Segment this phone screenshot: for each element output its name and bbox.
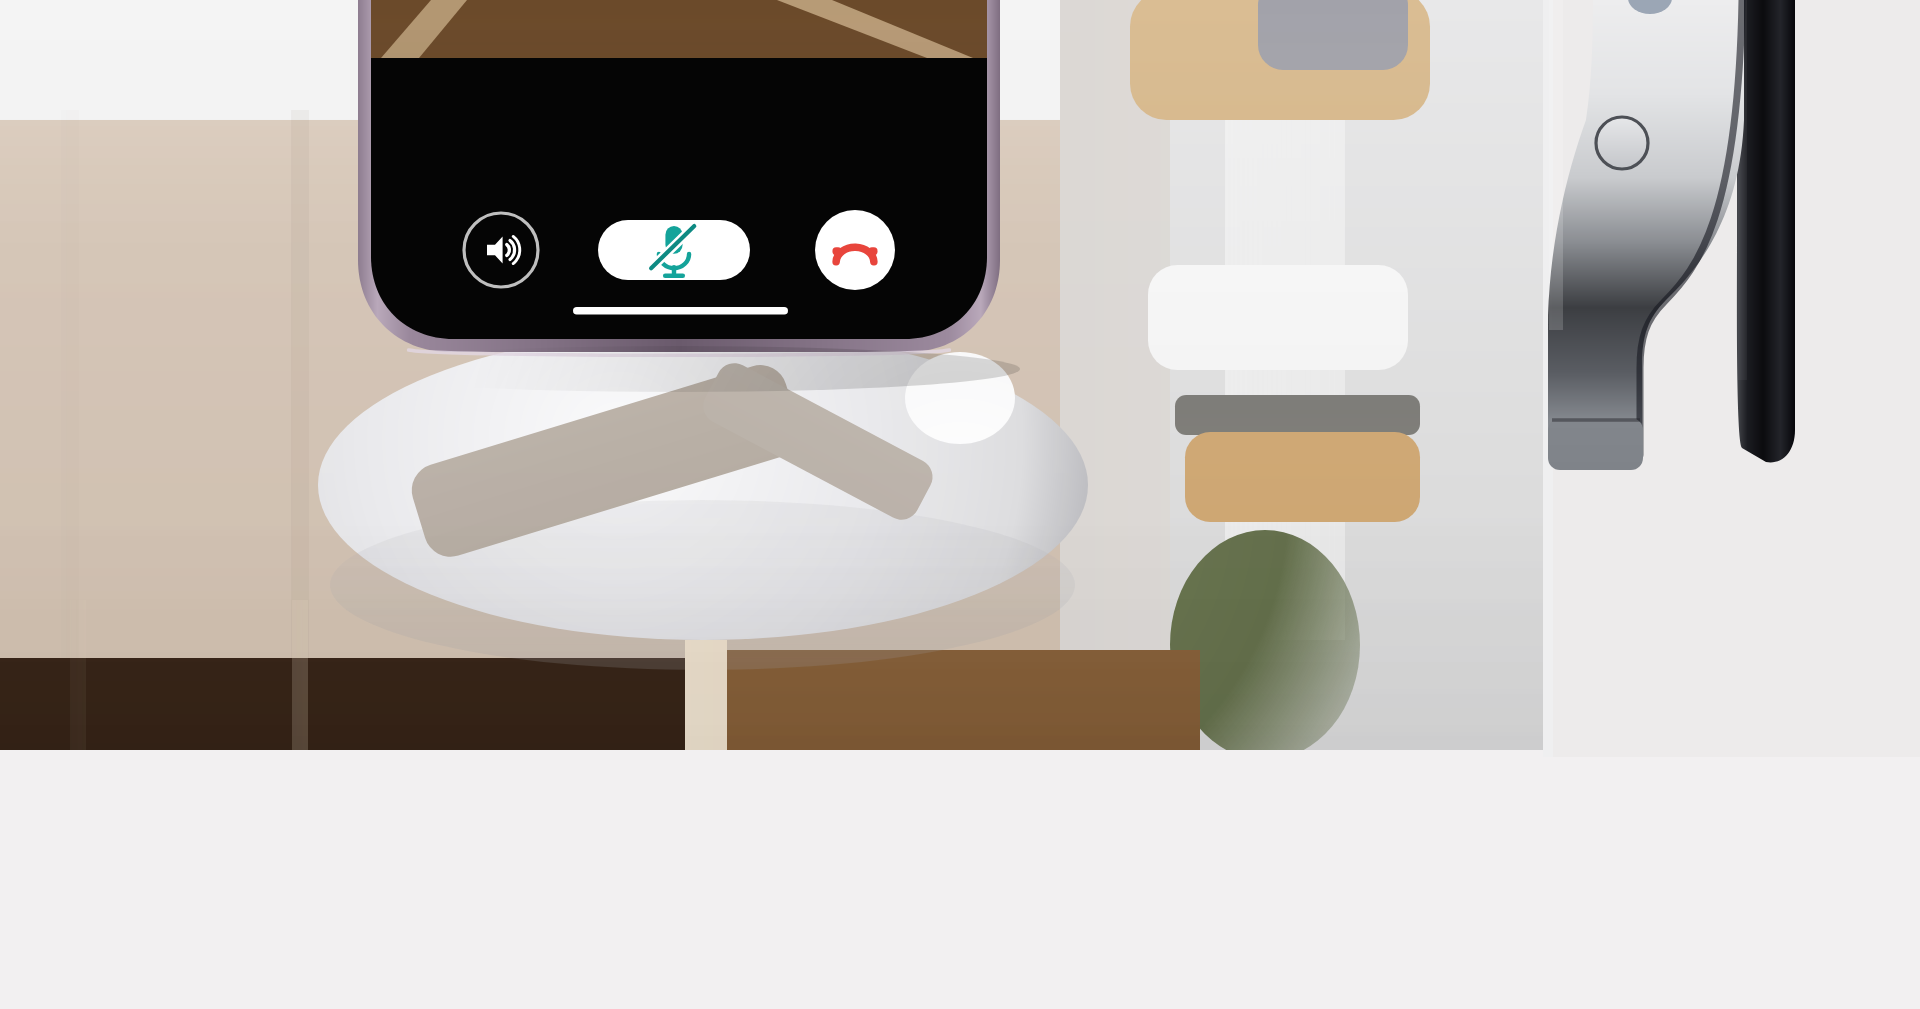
button[interactable]: Speaker <box>455 200 555 300</box>
button[interactable]: End call <box>808 200 903 300</box>
button[interactable]: Mute microphone <box>597 215 752 285</box>
